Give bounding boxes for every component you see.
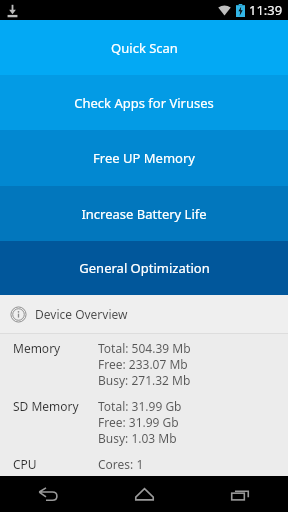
button[interactable]: Increase Battery Life [0,186,288,241]
staticText: Cores: 1 [98,456,144,472]
staticText: Busy: 1.03 Mb [98,430,177,446]
staticText: Total: 504.39 Mb [98,340,191,356]
button[interactable]: General Optimization [0,241,288,295]
staticText: Free: 233.07 Mb [98,356,188,372]
staticText: Memory [13,340,98,356]
staticText: Quick Scan [111,39,178,57]
button[interactable]: Recent apps [192,476,288,512]
button[interactable]: Back [0,476,96,512]
staticText: General Optimization [79,259,210,277]
button[interactable]: Quick Scan [0,20,288,75]
staticText: Device Overview [35,306,128,322]
staticText: Check Apps for Viruses [74,94,214,112]
staticText: CPU [13,456,98,472]
staticText: Total: 31.99 Gb [98,398,182,414]
staticText: Free: 31.99 Gb [98,414,179,430]
staticText: Free UP Memory [93,149,195,167]
staticText: Increase Battery Life [81,205,207,223]
button[interactable]: Home [96,476,192,512]
button[interactable]: Check Apps for Viruses [0,75,288,130]
staticText: 11:39 [249,1,283,19]
staticText: Busy: 271.32 Mb [98,372,191,388]
button[interactable]: Free UP Memory [0,130,288,186]
staticText: SD Memory [13,398,98,414]
